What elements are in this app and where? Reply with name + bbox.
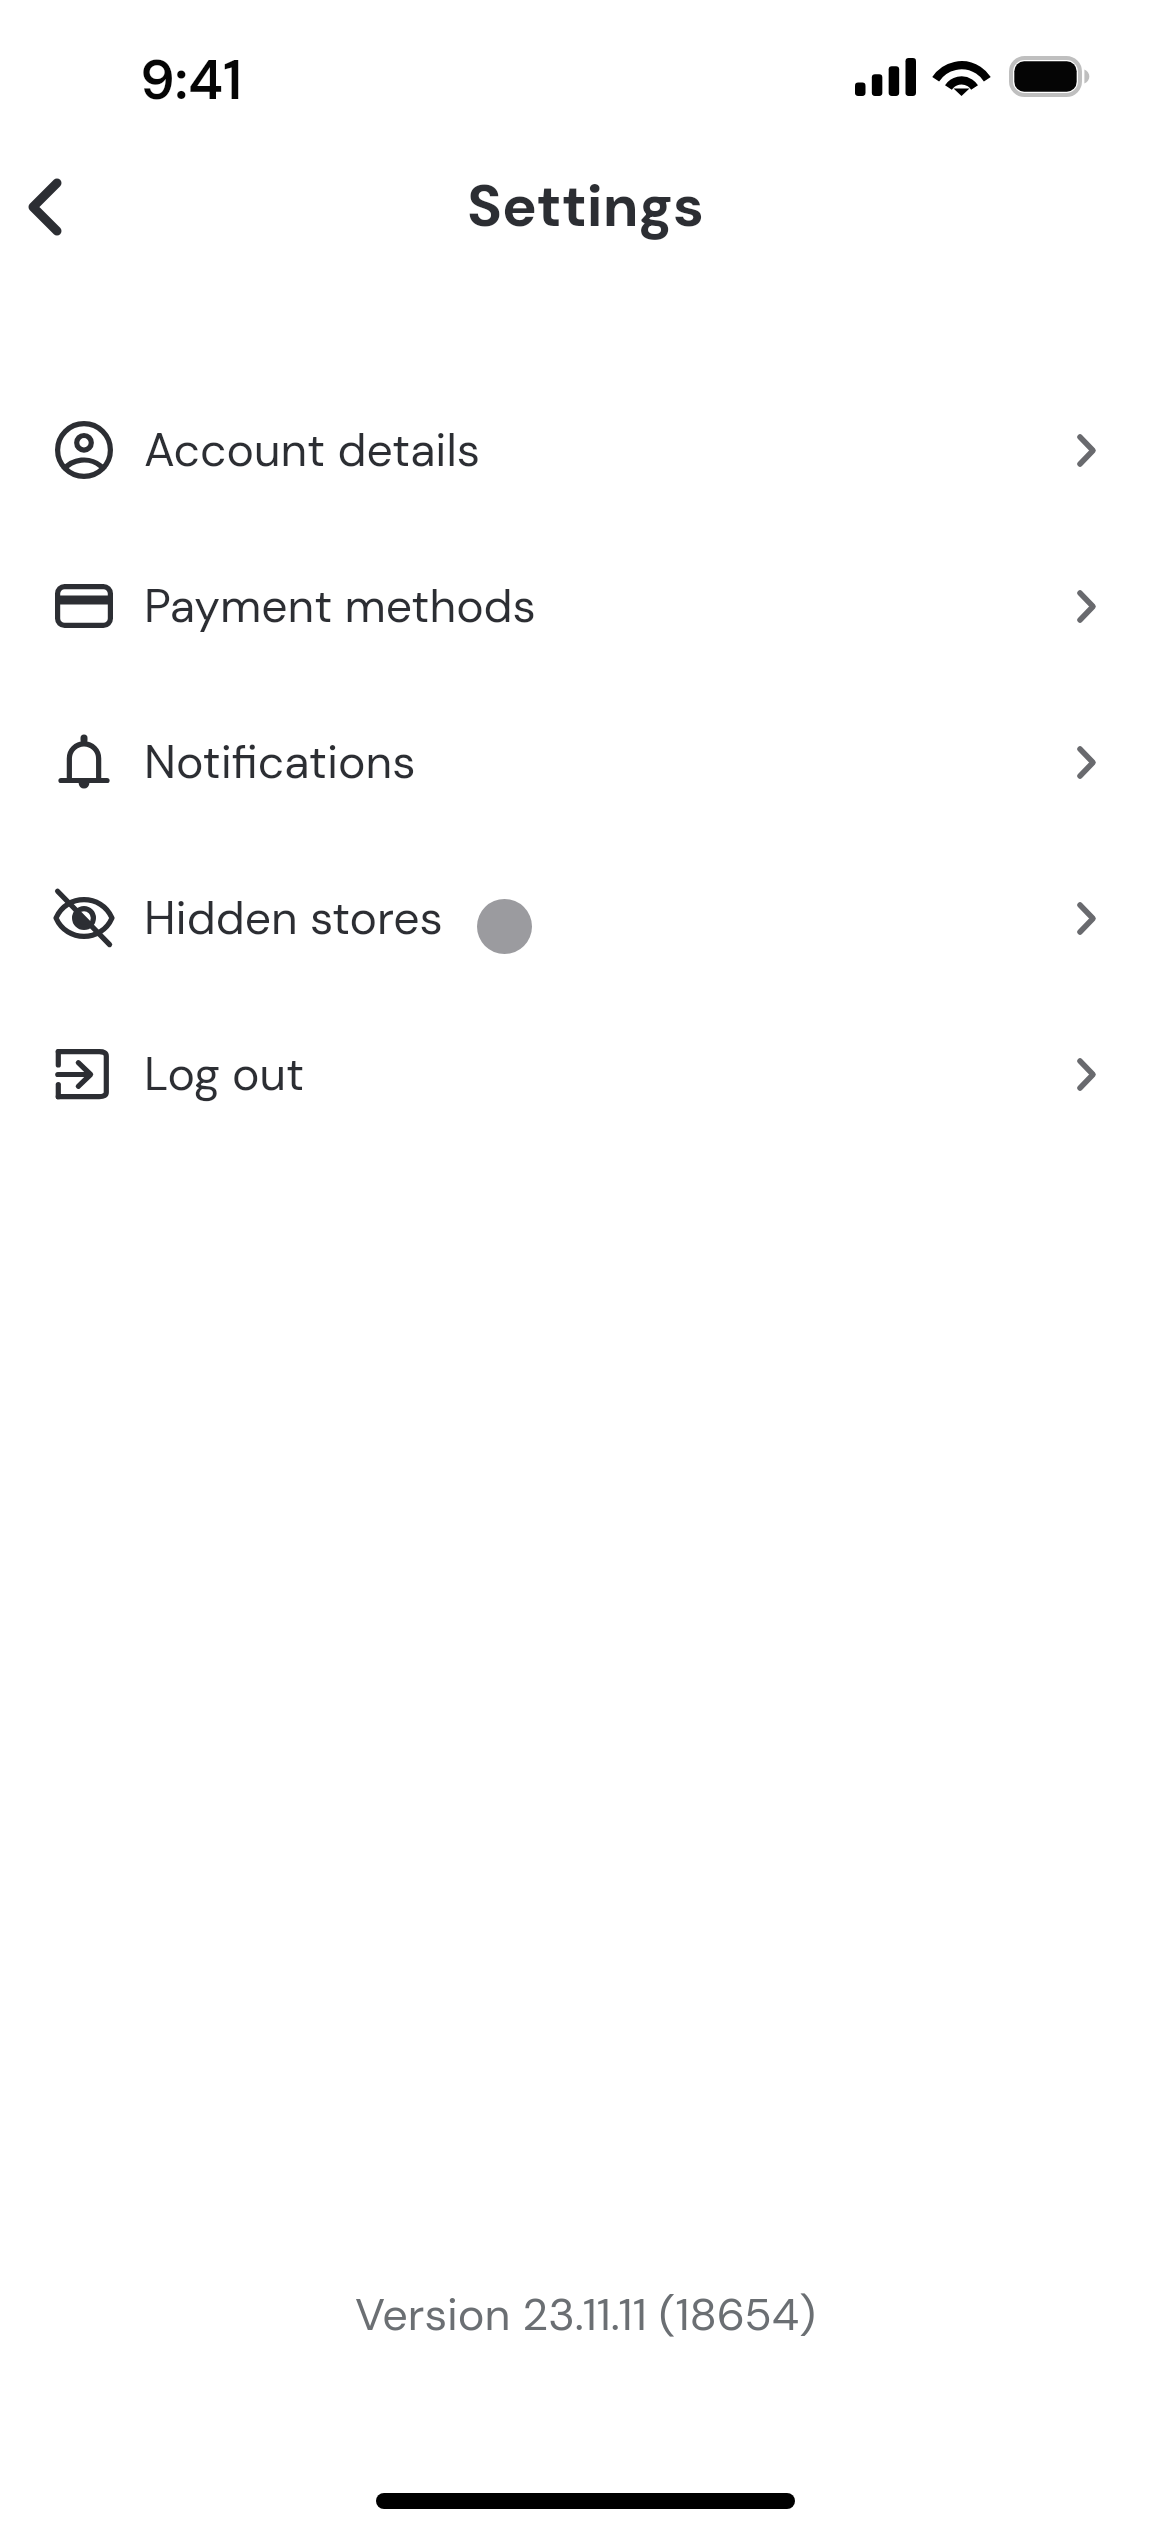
button[interactable]: Hidden stores: [0, 840, 1170, 996]
button[interactable]: Account details: [0, 372, 1170, 528]
staticText: Notifications: [144, 732, 416, 792]
button[interactable]: Log out: [0, 996, 1170, 1152]
button[interactable]: Back: [0, 157, 95, 257]
button[interactable]: Payment methods: [0, 528, 1170, 684]
staticText: Version 23.11.11 (18654): [355, 2285, 816, 2344]
staticText: 9:41: [140, 44, 243, 116]
button[interactable]: Notifications: [0, 684, 1170, 840]
staticText: Hidden stores: [144, 888, 443, 948]
staticText: Log out: [144, 1044, 305, 1104]
staticText: Settings: [467, 168, 704, 244]
staticText: Account details: [144, 420, 481, 480]
staticText: Payment methods: [144, 576, 536, 636]
